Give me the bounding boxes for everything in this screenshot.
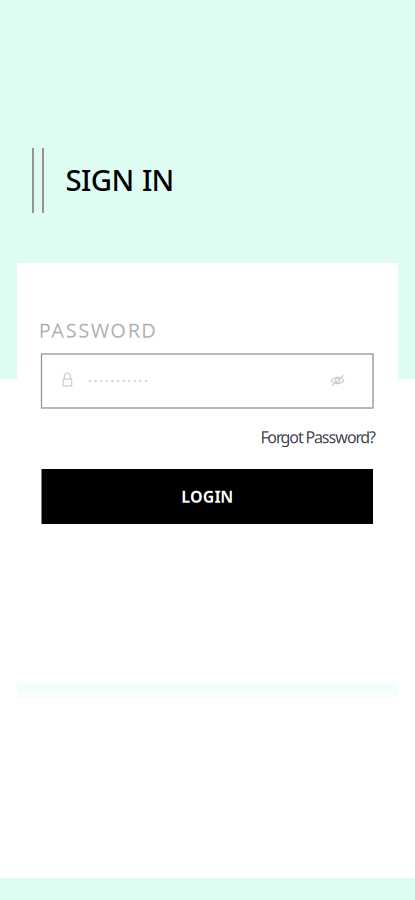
staticText: SIGN IN: [65, 160, 175, 199]
button[interactable]: Show password: [320, 363, 354, 397]
button[interactable]: Password: [41, 354, 373, 408]
button[interactable]: LOGIN: [41, 469, 373, 524]
button[interactable]: Forgot Password?: [216, 425, 376, 449]
staticText: PASSWORD: [39, 317, 156, 343]
staticText: LOGIN: [181, 486, 233, 507]
staticText: Forgot Password?: [260, 426, 376, 448]
